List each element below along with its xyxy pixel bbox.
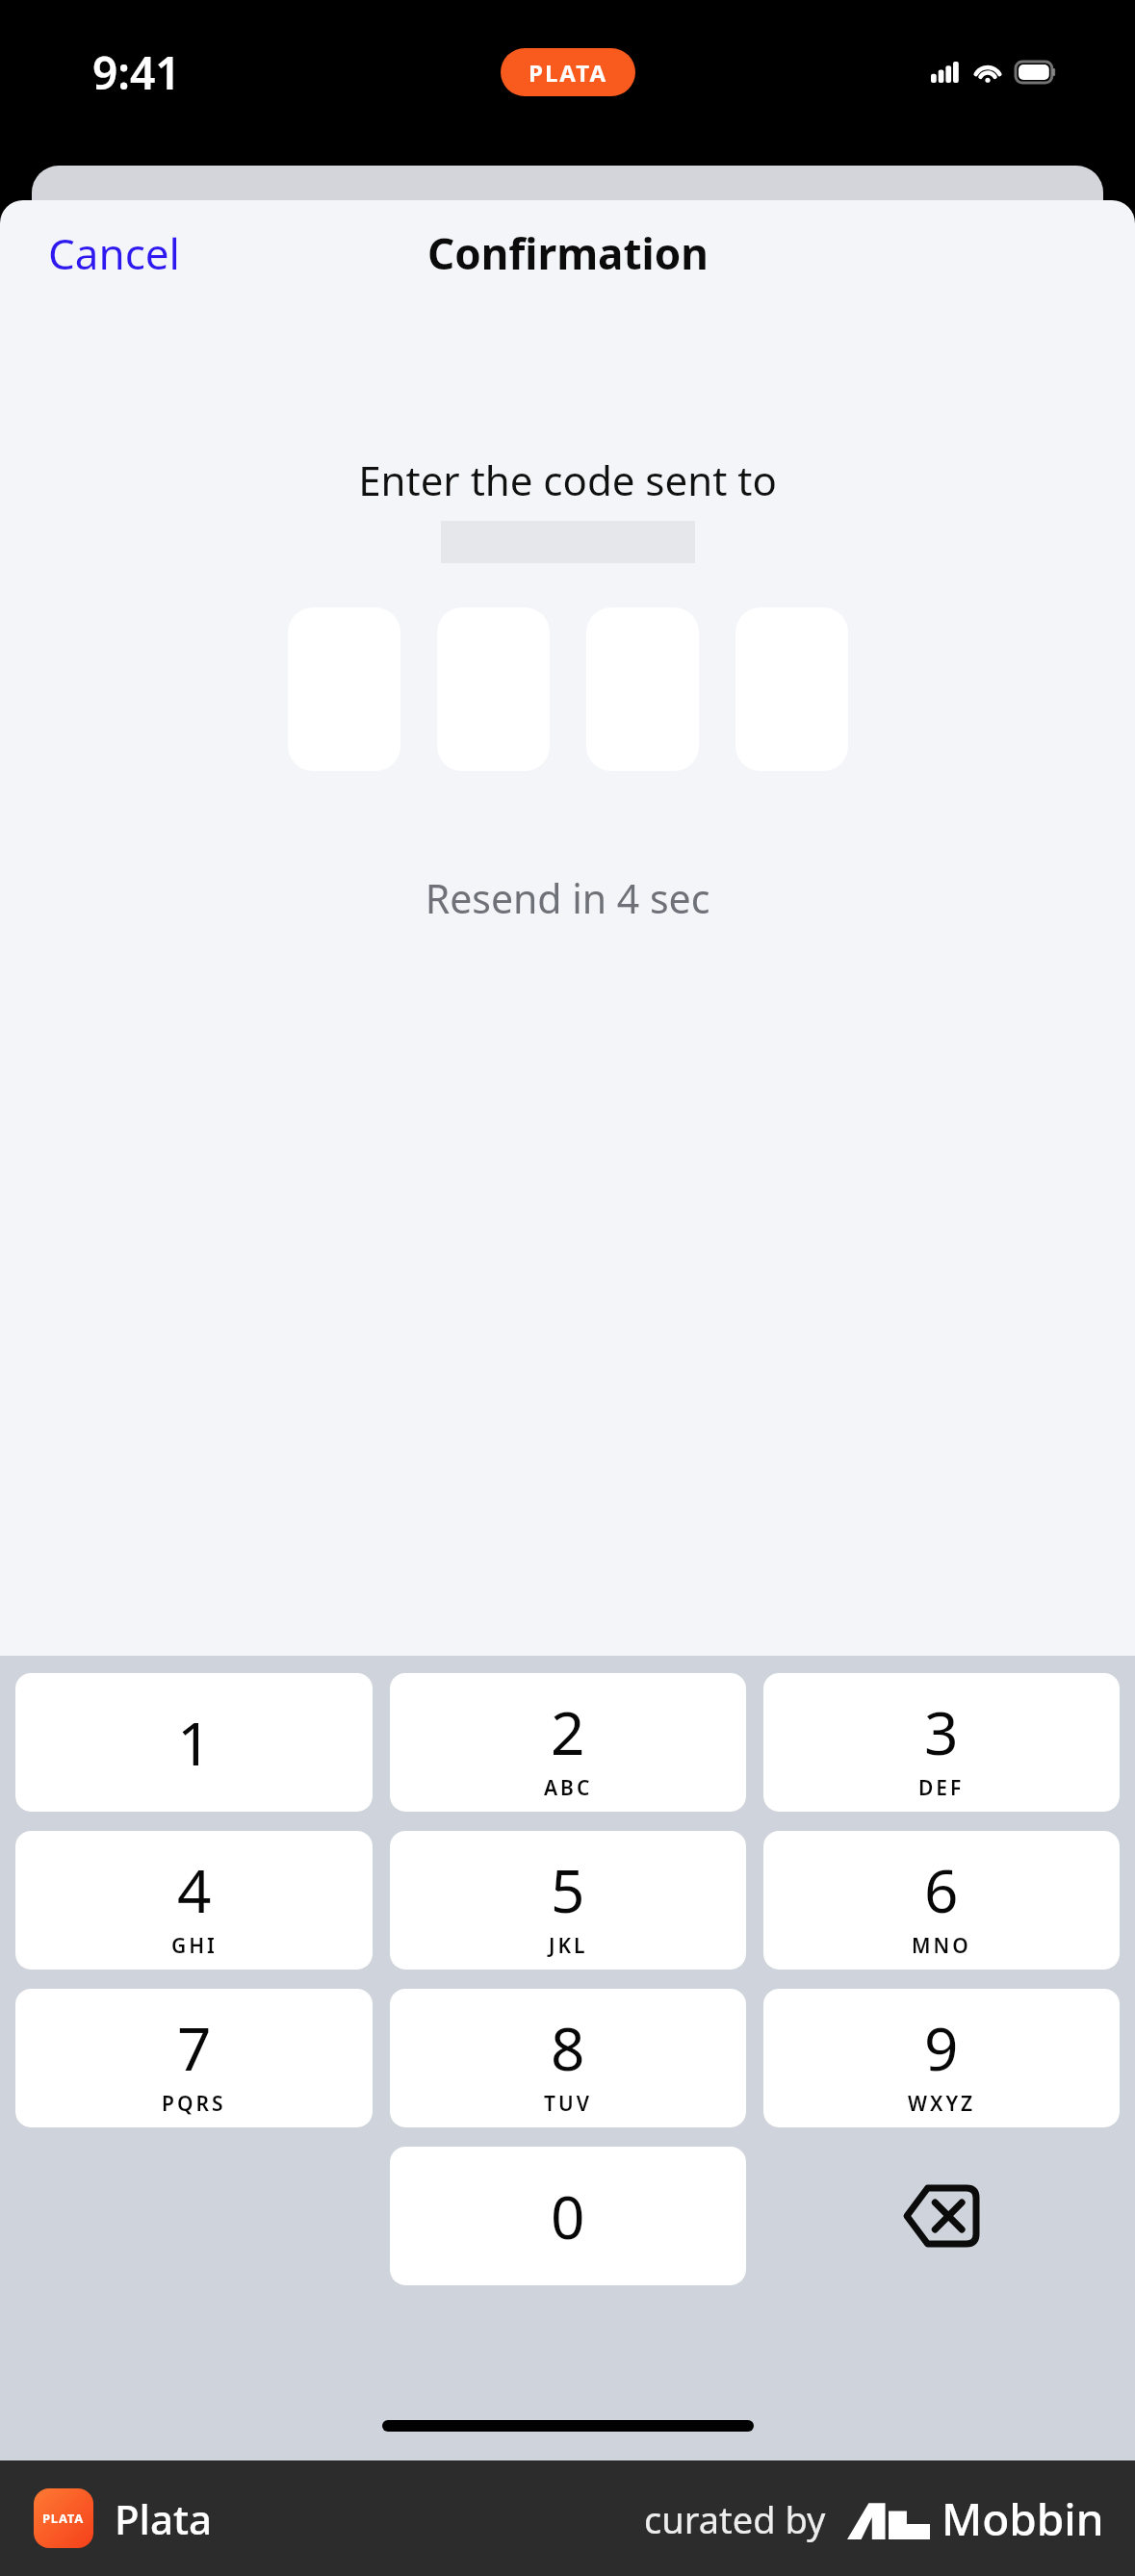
staticText: PLATA xyxy=(529,57,608,89)
staticText: DEF xyxy=(918,1774,965,1802)
button[interactable]: 7 xyxy=(15,1989,373,2127)
button[interactable]: 4 xyxy=(15,1831,373,1970)
button[interactable]: 6 xyxy=(763,1831,1120,1970)
staticText: 2 xyxy=(551,1691,585,1772)
button[interactable]: Backspace xyxy=(763,2147,1120,2285)
button[interactable]: 5 xyxy=(390,1831,746,1970)
staticText: PLATA xyxy=(42,2510,85,2527)
button[interactable]: 3 xyxy=(763,1673,1120,1812)
staticText: 8 xyxy=(551,2007,585,2088)
staticText: 1 xyxy=(177,1702,212,1783)
staticText: WXYZ xyxy=(908,2090,976,2118)
staticText: 6 xyxy=(924,1849,959,1930)
button[interactable]: 8 xyxy=(390,1989,746,2127)
button[interactable]: 2 xyxy=(390,1673,746,1812)
staticText: 7 xyxy=(177,2007,212,2088)
staticText: TUV xyxy=(544,2090,592,2118)
staticText: JKL xyxy=(549,1932,588,1960)
staticText: 9 xyxy=(924,2007,959,2088)
staticText: 0 xyxy=(551,2176,585,2256)
button[interactable]: 1 xyxy=(15,1673,373,1812)
staticText: PQRS xyxy=(162,2090,226,2118)
staticText: 5 xyxy=(551,1849,585,1930)
staticText: 3 xyxy=(924,1691,959,1772)
staticText: Plata xyxy=(115,2491,213,2546)
staticText: 4 xyxy=(177,1849,212,1930)
staticText: Mobbin xyxy=(942,2488,1104,2549)
staticText: Enter the code sent to xyxy=(0,452,1135,507)
staticText: 9:41 xyxy=(92,42,181,103)
staticText: Cancel xyxy=(48,224,180,282)
button[interactable]: Cancel xyxy=(0,215,199,292)
staticText: curated by xyxy=(644,2494,826,2544)
staticText: Confirmation xyxy=(427,224,709,282)
staticText: Resend in 4 sec xyxy=(0,871,1135,925)
button[interactable]: 0 xyxy=(390,2147,746,2285)
staticText: ABC xyxy=(544,1774,593,1802)
staticText: MNO xyxy=(912,1932,971,1960)
button[interactable]: 9 xyxy=(763,1989,1120,2127)
staticText: GHI xyxy=(171,1932,218,1960)
